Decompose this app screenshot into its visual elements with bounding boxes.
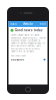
staticText: Article: [23, 22, 33, 26]
staticText: Back: [10, 22, 16, 26]
button[interactable]: Edit: [40, 22, 46, 26]
button[interactable]: Status: [43, 59, 45, 61]
staticText: Published today: [10, 54, 25, 57]
staticText: Lorem ipsum dolor sit amet, consectetur …: [10, 34, 45, 53]
staticText: Good news today: [15, 28, 43, 32]
button[interactable]: Back: [10, 22, 16, 26]
staticText: Subscribe: [10, 58, 23, 61]
staticText: Edit: [40, 22, 46, 26]
button[interactable]: Subscribe: [10, 58, 23, 61]
